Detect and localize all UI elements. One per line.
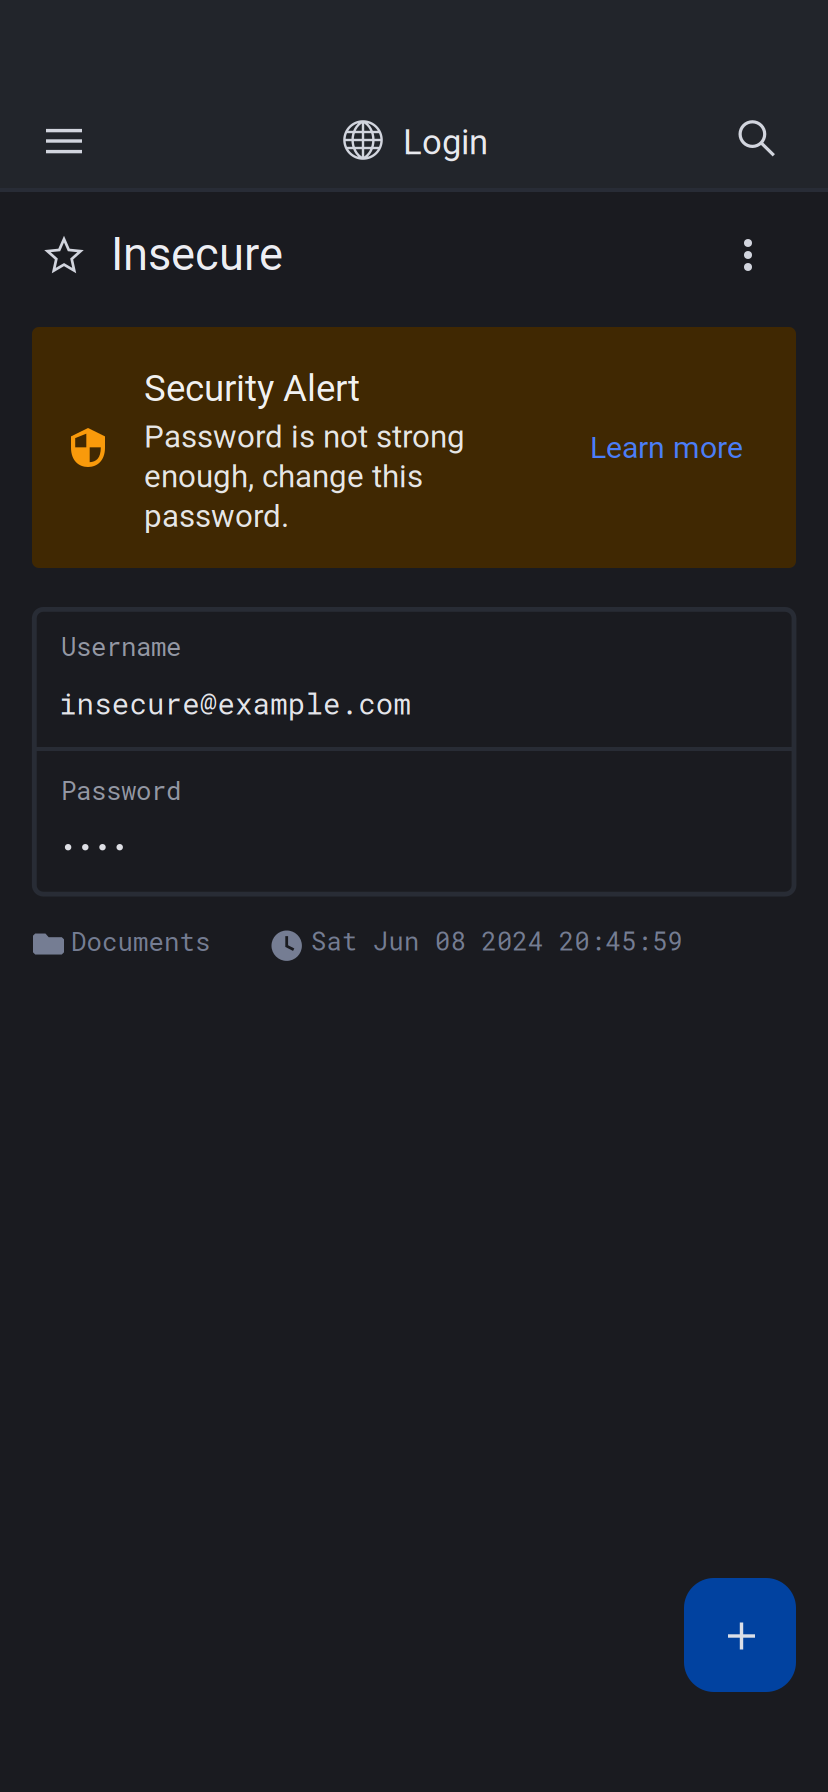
staticText: Documents [71,924,210,958]
staticText: Login [403,122,488,163]
staticText: Username [61,629,181,663]
staticText: Insecure [111,228,283,281]
button[interactable]: Add new entry [684,1578,796,1692]
staticText: Security Alert [144,367,360,410]
button[interactable]: Search [714,96,802,184]
staticText: Learn more [590,430,743,465]
button[interactable]: Password, hidden [37,751,792,893]
button[interactable]: Learn more [572,412,761,483]
staticText: Password [61,773,181,807]
staticText: insecure@example.com [59,684,410,722]
staticText: Password is not strong enough, change th… [144,418,465,535]
button[interactable]: More options [706,213,790,297]
button[interactable]: Open navigation menu [20,96,108,184]
button[interactable]: Add to favourites [22,216,106,300]
button[interactable]: Username [37,609,792,749]
staticText: Sat Jun 08 2024 20:45:59 [311,924,682,957]
